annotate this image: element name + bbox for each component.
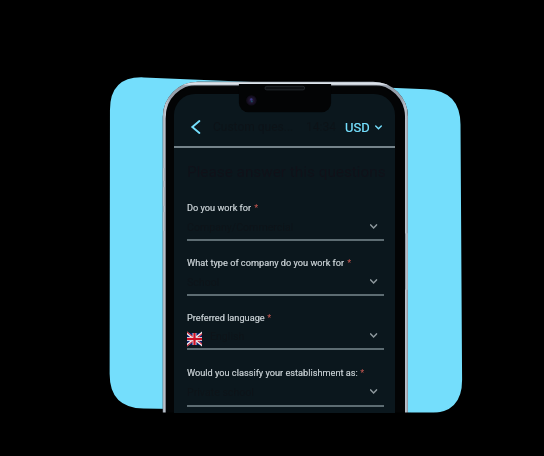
button[interactable]: Do you work for: [187, 202, 384, 243]
button[interactable]: What type of company do you work for: [187, 257, 384, 298]
button[interactable]: Preferred language: [187, 312, 384, 352]
staticText: What type of company do you work for: [187, 257, 345, 268]
staticText: USD: [345, 120, 370, 135]
staticText: *: [252, 202, 259, 213]
button[interactable]: Back: [191, 119, 203, 135]
staticText: Do you work for: [187, 202, 252, 213]
staticText: *: [265, 312, 272, 323]
staticText: *: [345, 257, 352, 268]
button[interactable]: Would you classify your establishment as…: [187, 367, 384, 408]
staticText: *: [358, 367, 365, 378]
staticText: Would you classify your establishment as…: [187, 367, 358, 378]
button[interactable]: USD: [345, 118, 382, 136]
staticText: Preferred language: [187, 312, 265, 323]
